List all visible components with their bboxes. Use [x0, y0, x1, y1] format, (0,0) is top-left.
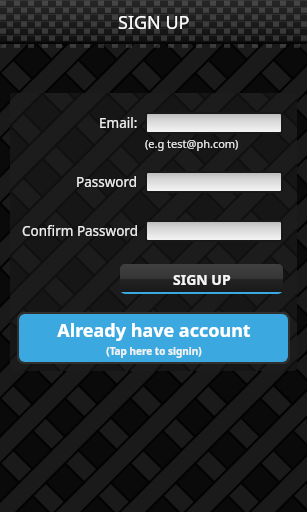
button[interactable]: [147, 222, 281, 240]
staticText: Already have account: [57, 318, 251, 343]
staticText: (e.g test@ph.com): [145, 136, 239, 151]
staticText: SIGN UP: [118, 10, 190, 35]
staticText: Password: [76, 173, 138, 191]
button[interactable]: [147, 173, 281, 191]
staticText: Email:: [99, 114, 138, 132]
staticText: (Tap here to signin): [106, 344, 202, 358]
button[interactable]: SIGN UP: [0, 0, 307, 44]
staticText: SIGN UP: [173, 270, 231, 289]
staticText: Confirm Password: [22, 222, 138, 240]
button[interactable]: Already have account: [19, 314, 288, 362]
button[interactable]: SIGN UP: [120, 264, 283, 294]
button[interactable]: [147, 114, 281, 132]
